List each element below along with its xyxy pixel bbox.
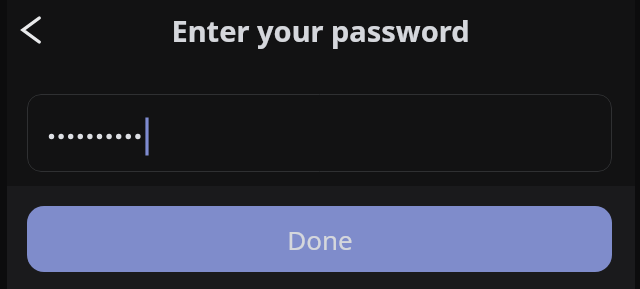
staticText: Done <box>287 222 353 257</box>
button[interactable]: Back <box>6 6 54 54</box>
staticText: Enter your password <box>171 11 470 50</box>
button[interactable]: Done <box>27 206 612 272</box>
button[interactable] <box>27 94 612 172</box>
